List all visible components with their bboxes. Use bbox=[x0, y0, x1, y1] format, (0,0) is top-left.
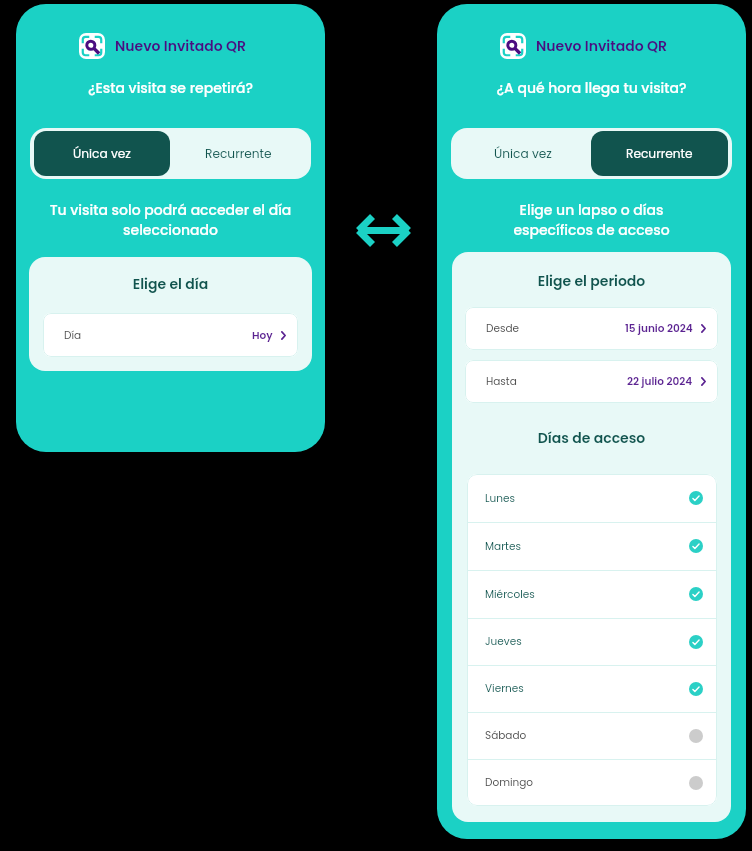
staticText: Nuevo Invitado QR bbox=[115, 36, 246, 56]
staticText: Días de acceso bbox=[452, 428, 731, 448]
staticText: 22 julio 2024 bbox=[627, 374, 693, 389]
staticText: Única vez bbox=[494, 145, 552, 162]
staticText: ¿A qué hora llega tu visita? bbox=[437, 78, 746, 98]
staticText: Tu visita solo podrá acceder el día sele… bbox=[16, 200, 325, 240]
button[interactable]: Martes bbox=[467, 522, 717, 570]
button[interactable]: Jueves bbox=[467, 618, 717, 665]
button[interactable]: Domingo bbox=[467, 759, 717, 806]
staticText: Elige el periodo bbox=[452, 271, 731, 291]
button[interactable]: Viernes bbox=[467, 665, 717, 712]
staticText: Sábado bbox=[485, 728, 527, 743]
staticText: Lunes bbox=[485, 491, 515, 506]
staticText: 15 junio 2024 bbox=[625, 321, 693, 336]
staticText: Única vez bbox=[73, 145, 131, 162]
button[interactable]: Lunes bbox=[467, 474, 717, 522]
staticText: Elige un lapso o días específicos de acc… bbox=[437, 200, 746, 240]
button[interactable]: Recurrente bbox=[591, 131, 728, 176]
staticText: Recurrente bbox=[626, 145, 693, 162]
button[interactable]: Única vez bbox=[34, 131, 170, 176]
button[interactable]: Sábado bbox=[467, 712, 717, 759]
staticText: Nuevo Invitado QR bbox=[536, 36, 667, 56]
staticText: Día bbox=[64, 328, 82, 343]
staticText: Hoy bbox=[252, 328, 273, 343]
staticText: Elige el día bbox=[29, 274, 312, 294]
button[interactable]: Recurrente bbox=[170, 131, 307, 176]
button[interactable]: Única vez bbox=[455, 131, 591, 176]
staticText: Domingo bbox=[485, 775, 534, 790]
staticText: Desde bbox=[486, 321, 520, 336]
button[interactable]: Miércoles bbox=[467, 570, 717, 618]
button[interactable]: Día bbox=[43, 313, 298, 357]
staticText: Recurrente bbox=[205, 145, 272, 162]
staticText: Martes bbox=[485, 539, 521, 554]
staticText: Jueves bbox=[485, 634, 522, 649]
staticText: Miércoles bbox=[485, 587, 535, 602]
staticText: ¿Esta visita se repetirá? bbox=[16, 78, 325, 98]
button[interactable]: Alternar vista bbox=[356, 214, 411, 247]
button[interactable]: Desde bbox=[465, 307, 718, 350]
staticText: Hasta bbox=[486, 374, 517, 389]
button[interactable]: Hasta bbox=[465, 360, 718, 403]
staticText: Viernes bbox=[485, 681, 524, 696]
